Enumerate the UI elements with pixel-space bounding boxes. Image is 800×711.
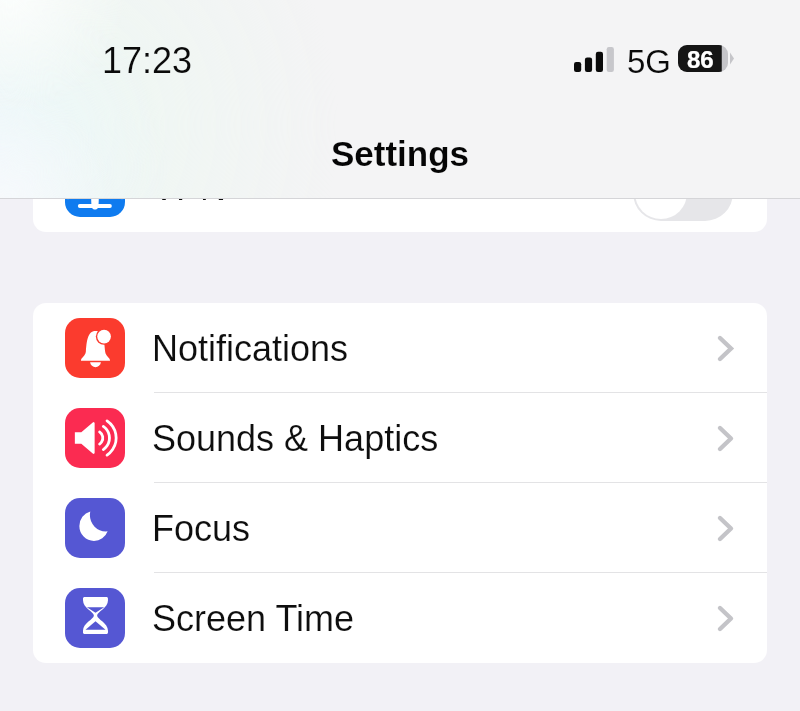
staticText: Focus xyxy=(152,508,251,548)
staticText: 17:23 xyxy=(102,40,193,80)
staticText: 86 xyxy=(687,46,714,73)
staticText: Screen Time xyxy=(152,598,355,638)
button[interactable]: Focus xyxy=(33,483,767,573)
staticText: 5G xyxy=(627,43,672,80)
button[interactable]: VPN toggle xyxy=(633,165,733,221)
staticText: VPN xyxy=(152,167,227,207)
button[interactable]: Screen Time xyxy=(33,573,767,663)
staticText: Notifications xyxy=(152,328,349,368)
button[interactable]: Notifications xyxy=(33,303,767,393)
staticText: Sounds & Haptics xyxy=(152,418,439,458)
button[interactable]: Sounds & Haptics xyxy=(33,393,767,483)
button[interactable]: VPN xyxy=(33,142,767,232)
staticText: Settings xyxy=(331,134,470,173)
